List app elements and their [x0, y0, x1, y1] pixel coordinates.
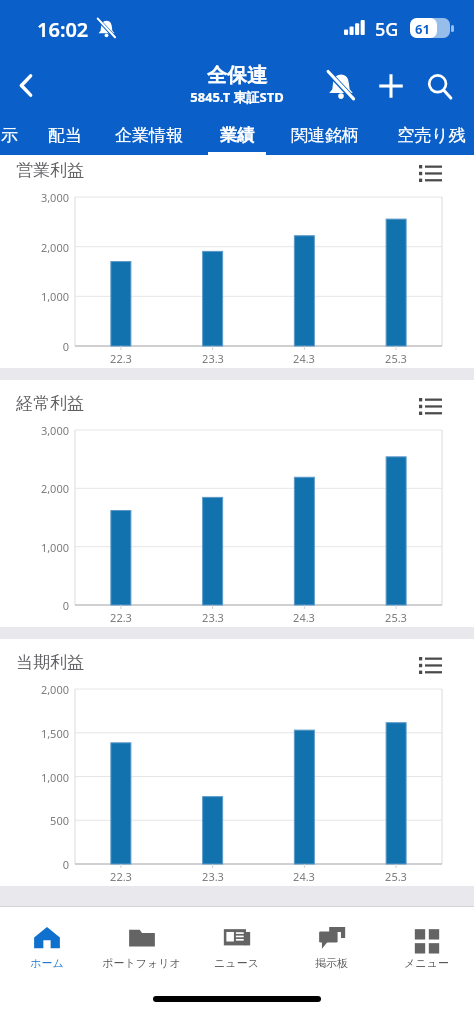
- staticText: 3,000: [40, 423, 69, 438]
- staticText: 0: [62, 598, 69, 613]
- staticText: 23.3: [202, 351, 224, 366]
- button[interactable]: 配当: [36, 115, 94, 155]
- staticText: 23.3: [202, 610, 224, 625]
- button[interactable]: ニュース: [189, 907, 284, 989]
- staticText: 掲示板: [315, 956, 348, 970]
- staticText: 22.3: [110, 869, 132, 884]
- staticText: 500: [50, 813, 69, 828]
- button[interactable]: Show as list: [402, 153, 458, 193]
- staticText: 企業情報: [115, 125, 183, 146]
- staticText: 0: [62, 339, 69, 354]
- staticText: 5845.T 東証STD: [190, 88, 284, 106]
- staticText: 示: [1, 125, 18, 146]
- staticText: 3,000: [40, 190, 69, 205]
- button[interactable]: 業績: [208, 115, 266, 155]
- button[interactable]: Search: [418, 65, 460, 107]
- staticText: 25.3: [385, 869, 407, 884]
- staticText: ニュース: [214, 956, 259, 970]
- staticText: 25.3: [385, 610, 407, 625]
- button[interactable]: Show as list: [402, 645, 458, 685]
- button[interactable]: メニュー: [379, 907, 474, 989]
- button[interactable]: Show as list: [402, 386, 458, 426]
- staticText: 23.3: [202, 869, 224, 884]
- staticText: ポートフォリオ: [102, 956, 181, 970]
- staticText: 空売り残: [397, 125, 466, 146]
- button[interactable]: ポートフォリオ: [94, 907, 189, 989]
- staticText: 1,000: [40, 289, 69, 304]
- button[interactable]: 空売り残: [381, 115, 474, 155]
- staticText: 2,000: [40, 481, 69, 496]
- staticText: 61: [415, 20, 430, 38]
- button[interactable]: 掲示板: [284, 907, 379, 989]
- button[interactable]: ホーム: [0, 907, 94, 989]
- button[interactable]: 企業情報: [102, 115, 196, 155]
- staticText: 22.3: [110, 610, 132, 625]
- button[interactable]: Add: [370, 65, 412, 107]
- staticText: 22.3: [110, 351, 132, 366]
- staticText: 0: [62, 857, 69, 872]
- staticText: 1,500: [40, 726, 69, 741]
- button[interactable]: 示: [0, 115, 27, 155]
- staticText: 業績: [220, 125, 254, 146]
- staticText: 2,000: [40, 682, 69, 697]
- staticText: 24.3: [293, 351, 315, 366]
- button[interactable]: Notifications off: [320, 65, 362, 107]
- staticText: 関連銘柄: [291, 125, 359, 146]
- staticText: 2,000: [40, 240, 69, 255]
- staticText: 経常利益: [16, 393, 84, 414]
- staticText: ホーム: [30, 956, 64, 970]
- staticText: 5G: [375, 17, 399, 42]
- staticText: 全保連: [207, 63, 267, 88]
- staticText: 営業利益: [16, 160, 84, 181]
- staticText: 当期利益: [16, 652, 84, 673]
- button[interactable]: Back: [2, 61, 50, 109]
- staticText: メニュー: [404, 956, 449, 970]
- staticText: 24.3: [293, 610, 315, 625]
- staticText: 1,000: [40, 540, 69, 555]
- button[interactable]: 関連銘柄: [278, 115, 372, 155]
- staticText: 24.3: [293, 869, 315, 884]
- staticText: 配当: [48, 125, 82, 146]
- staticText: 25.3: [385, 351, 407, 366]
- staticText: 1,000: [40, 770, 69, 785]
- staticText: 16:02: [37, 16, 89, 43]
